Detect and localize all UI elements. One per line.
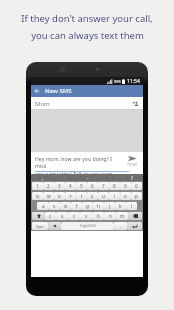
staticText: s [53, 203, 56, 209]
button[interactable]: m [116, 212, 128, 220]
button[interactable]: f [71, 202, 82, 210]
button[interactable]: Back [31, 85, 43, 97]
staticText: w [47, 193, 51, 199]
button[interactable]: Hey mom, how are you doing? I miss [31, 152, 143, 174]
button[interactable]: q [32, 192, 43, 200]
button[interactable]: 3 [54, 182, 65, 190]
staticText: z [49, 213, 52, 219]
staticText: 70/160 [127, 163, 137, 167]
button[interactable]: v [80, 212, 92, 220]
button[interactable]: t [76, 192, 87, 200]
button[interactable]: g [82, 202, 93, 210]
staticText: 95% [114, 79, 121, 84]
button[interactable]: j [104, 202, 115, 210]
staticText: you a lot lately! Talk to you soon. [35, 170, 114, 174]
button[interactable]: 0 [131, 182, 142, 190]
staticText: | [109, 175, 112, 181]
button[interactable]: Sym [32, 222, 48, 230]
button[interactable]: z [45, 212, 56, 220]
button[interactable]: . [114, 222, 127, 230]
button[interactable]: English(US) [61, 222, 114, 230]
staticText: v [85, 213, 88, 219]
staticText: a [42, 203, 45, 209]
button[interactable]: , [31, 174, 54, 181]
staticText: Sym [36, 224, 44, 229]
staticText: 0 [135, 183, 138, 189]
staticText: 6 [91, 183, 94, 189]
button[interactable]: 2 [43, 182, 54, 190]
button[interactable]: c [68, 212, 80, 220]
button[interactable]: ? [121, 174, 143, 181]
button[interactable]: e [54, 192, 65, 200]
button[interactable]: h [93, 202, 104, 210]
staticText: | [64, 175, 67, 181]
button[interactable]: u [98, 192, 109, 200]
button[interactable]: Enter [127, 222, 142, 230]
staticText: p [135, 193, 138, 199]
button[interactable]: 1 [32, 182, 43, 190]
staticText: you can always text them [31, 29, 144, 42]
staticText: q [36, 193, 39, 199]
button[interactable]: Add contact [132, 100, 140, 108]
staticText: 7 [102, 183, 105, 189]
button[interactable]: a [37, 202, 49, 210]
button[interactable]: - [77, 174, 99, 181]
button[interactable]: Keyboard settings [48, 222, 61, 230]
staticText: x [61, 213, 64, 219]
staticText: b [97, 213, 100, 219]
staticText: New SMS [45, 87, 72, 95]
staticText: ? [131, 175, 133, 181]
staticText: , [42, 175, 44, 181]
staticText: j [109, 203, 111, 209]
staticText: u [102, 193, 105, 199]
button[interactable]: 6 [87, 182, 98, 190]
staticText: c [73, 213, 76, 219]
button[interactable]: 7 [98, 182, 109, 190]
button[interactable]: 5 [76, 182, 87, 190]
button[interactable]: y [87, 192, 98, 200]
staticText: l [131, 203, 133, 209]
staticText: Mom [35, 100, 50, 108]
staticText: - [87, 175, 89, 181]
button[interactable]: w [43, 192, 54, 200]
staticText: 4 [69, 183, 72, 189]
staticText: 8 [113, 183, 116, 189]
staticText: f [76, 203, 78, 209]
staticText: 5 [80, 183, 83, 189]
staticText: English(US) [80, 224, 96, 228]
button[interactable]: d [60, 202, 71, 210]
button[interactable]: l [126, 202, 137, 210]
button[interactable]: Send [124, 155, 140, 169]
button[interactable]: o [120, 192, 131, 200]
button[interactable]: k [115, 202, 126, 210]
staticText: 2 [47, 183, 50, 189]
button[interactable]: s [49, 202, 60, 210]
button[interactable]: 8 [109, 182, 120, 190]
button[interactable]: p [131, 192, 142, 200]
staticText: h [97, 203, 100, 209]
button[interactable]: Mom [31, 97, 143, 110]
staticText: 3 [58, 183, 61, 189]
staticText: e [58, 193, 61, 199]
button[interactable]: 4 [65, 182, 76, 190]
button[interactable]: r [65, 192, 76, 200]
button[interactable]: Backspace [128, 212, 142, 220]
staticText: d [64, 203, 67, 209]
staticText: . [120, 223, 122, 229]
button[interactable]: b [92, 212, 104, 220]
button[interactable]: Shift [32, 212, 45, 220]
staticText: t [81, 193, 83, 199]
staticText: 11:54 [127, 78, 140, 85]
staticText: y [91, 193, 94, 199]
staticText: n [109, 213, 112, 219]
staticText: 1 [36, 183, 39, 189]
button[interactable]: n [104, 212, 116, 220]
staticText: i [114, 193, 116, 199]
button[interactable]: i [109, 192, 120, 200]
staticText: r [70, 193, 72, 199]
button[interactable]: 9 [120, 182, 131, 190]
button[interactable]: x [56, 212, 68, 220]
staticText: k [119, 203, 122, 209]
